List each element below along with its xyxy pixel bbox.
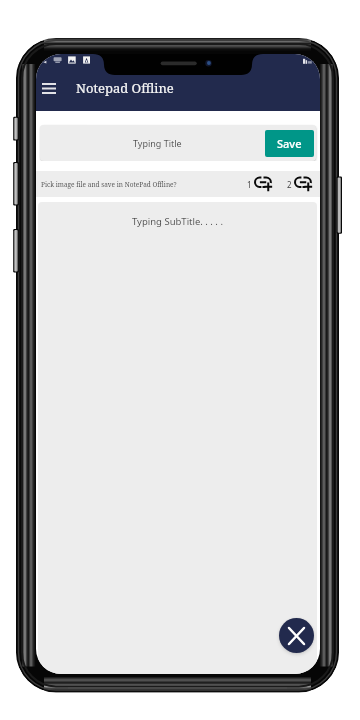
- button[interactable]: Add link 2: [287, 176, 313, 193]
- staticText: Pick image file and save in NotePad Offl…: [41, 180, 177, 189]
- button[interactable]: Add link 1: [247, 176, 273, 193]
- staticText: Typing Title: [133, 137, 182, 149]
- button[interactable]: Close: [279, 618, 314, 653]
- staticText: 1: [247, 179, 252, 190]
- button[interactable]: Typing SubTitle. . . . .: [38, 202, 317, 674]
- staticText: 2: [287, 179, 292, 190]
- button[interactable]: Typing Title: [40, 125, 265, 161]
- staticText: Save: [277, 136, 302, 151]
- staticText: Notepad Offline: [76, 79, 174, 97]
- staticText: Typing SubTitle. . . . .: [132, 215, 223, 228]
- button[interactable]: Save: [265, 130, 314, 157]
- button[interactable]: Open navigation menu: [38, 77, 60, 99]
